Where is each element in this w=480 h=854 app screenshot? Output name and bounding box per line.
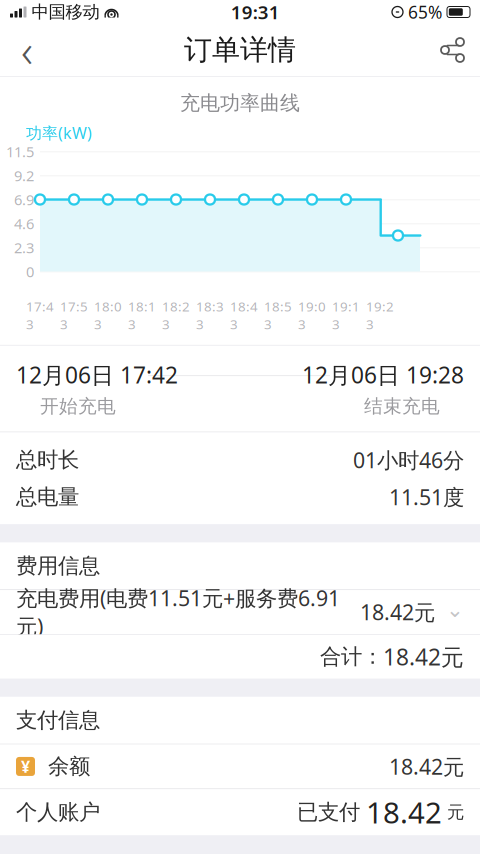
button[interactable]: 充电费用(电费11.51元+服务费6.91元): [0, 590, 480, 634]
staticText: 中国移动: [31, 1, 99, 23]
staticText: 11.51度: [389, 483, 464, 511]
staticText: 12月06日 17:42: [16, 360, 178, 390]
button[interactable]: Share: [426, 24, 480, 76]
staticText: ¥: [21, 756, 30, 777]
staticText: 19:31: [231, 0, 280, 24]
staticText: 订单详情: [184, 33, 296, 67]
staticText: 18:43: [230, 297, 258, 333]
staticText: 12月06日 19:28: [302, 360, 464, 390]
staticText: 19:03: [298, 297, 326, 333]
staticText: 开始充电: [40, 395, 116, 418]
staticText: 充电功率曲线: [180, 91, 300, 115]
staticText: 17:43: [26, 297, 54, 333]
staticText: 4.6: [14, 214, 34, 233]
staticText: 18.42: [366, 793, 442, 832]
staticText: 已支付: [297, 799, 366, 825]
staticText: 个人账户: [16, 799, 100, 825]
staticText: 18:33: [196, 297, 224, 333]
staticText: 支付信息: [16, 707, 100, 733]
staticText: ‹: [21, 20, 33, 80]
staticText: 18.42元: [383, 642, 464, 672]
staticText: 9.2: [14, 166, 34, 185]
staticText: 18:53: [264, 297, 292, 333]
staticText: 费用信息: [16, 553, 100, 579]
staticText: 充电费用(电费11.51元+服务费6.91元): [16, 584, 340, 640]
staticText: 总时长: [16, 447, 79, 473]
staticText: 功率(kW): [26, 122, 92, 143]
staticText: 余额: [48, 753, 90, 780]
staticText: 18:13: [128, 297, 156, 333]
staticText: 18:03: [94, 297, 122, 333]
staticText: 6.9: [14, 190, 34, 209]
staticText: 18.42元: [360, 598, 435, 626]
staticText: 总电量: [16, 484, 79, 510]
staticText: 元: [442, 801, 464, 823]
staticText: 19:23: [366, 297, 394, 333]
staticText: 17:53: [60, 297, 88, 333]
staticText: 0: [26, 262, 34, 281]
button[interactable]: Back: [0, 24, 54, 76]
staticText: ⌄: [446, 597, 464, 622]
staticText: 合计：: [320, 644, 383, 670]
staticText: 2.3: [14, 238, 34, 257]
staticText: 结束充电: [364, 395, 440, 418]
staticText: 11.5: [6, 142, 34, 161]
staticText: 18:23: [162, 297, 190, 333]
staticText: 19:13: [332, 297, 360, 333]
staticText: 18.42元: [389, 752, 464, 781]
staticText: 65%: [408, 0, 442, 23]
staticText: 01小时46分: [353, 446, 464, 474]
